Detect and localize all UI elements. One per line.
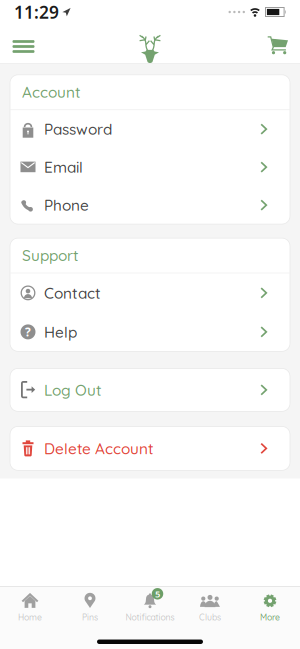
button[interactable]: More xyxy=(240,593,300,623)
button[interactable]: Log Out xyxy=(10,368,290,411)
staticText: Password xyxy=(44,119,112,139)
staticText: Notifications xyxy=(125,612,174,623)
button[interactable]: Pins xyxy=(60,593,120,623)
button[interactable]: 5 xyxy=(120,593,180,623)
button[interactable]: Email xyxy=(10,148,290,186)
staticText: More xyxy=(260,612,280,623)
staticText: ? xyxy=(25,324,31,340)
button[interactable]: Contact xyxy=(10,273,290,312)
button[interactable]: ? xyxy=(10,312,290,351)
staticText: Email xyxy=(44,157,83,177)
staticText: Account xyxy=(22,82,81,102)
staticText: Phone xyxy=(44,195,89,215)
staticText: Home xyxy=(18,612,42,623)
button[interactable]: Password xyxy=(10,110,290,148)
staticText: Contact xyxy=(44,283,101,302)
button[interactable]: Phone xyxy=(10,186,290,224)
staticText: Help xyxy=(44,322,77,341)
button[interactable]: Clubs xyxy=(180,593,240,623)
button[interactable]: Home xyxy=(0,593,60,623)
staticText: 11:29 xyxy=(14,0,59,23)
staticText: Support xyxy=(22,246,79,265)
staticText: Clubs xyxy=(199,612,221,623)
staticText: Delete Account xyxy=(44,439,154,458)
button[interactable]: Cart xyxy=(261,29,295,61)
staticText: 5 xyxy=(155,588,160,600)
staticText: Pins xyxy=(82,612,98,623)
button[interactable]: Menu xyxy=(6,30,40,62)
staticText: Log Out xyxy=(44,380,102,399)
button[interactable]: Delete Account xyxy=(10,426,290,470)
